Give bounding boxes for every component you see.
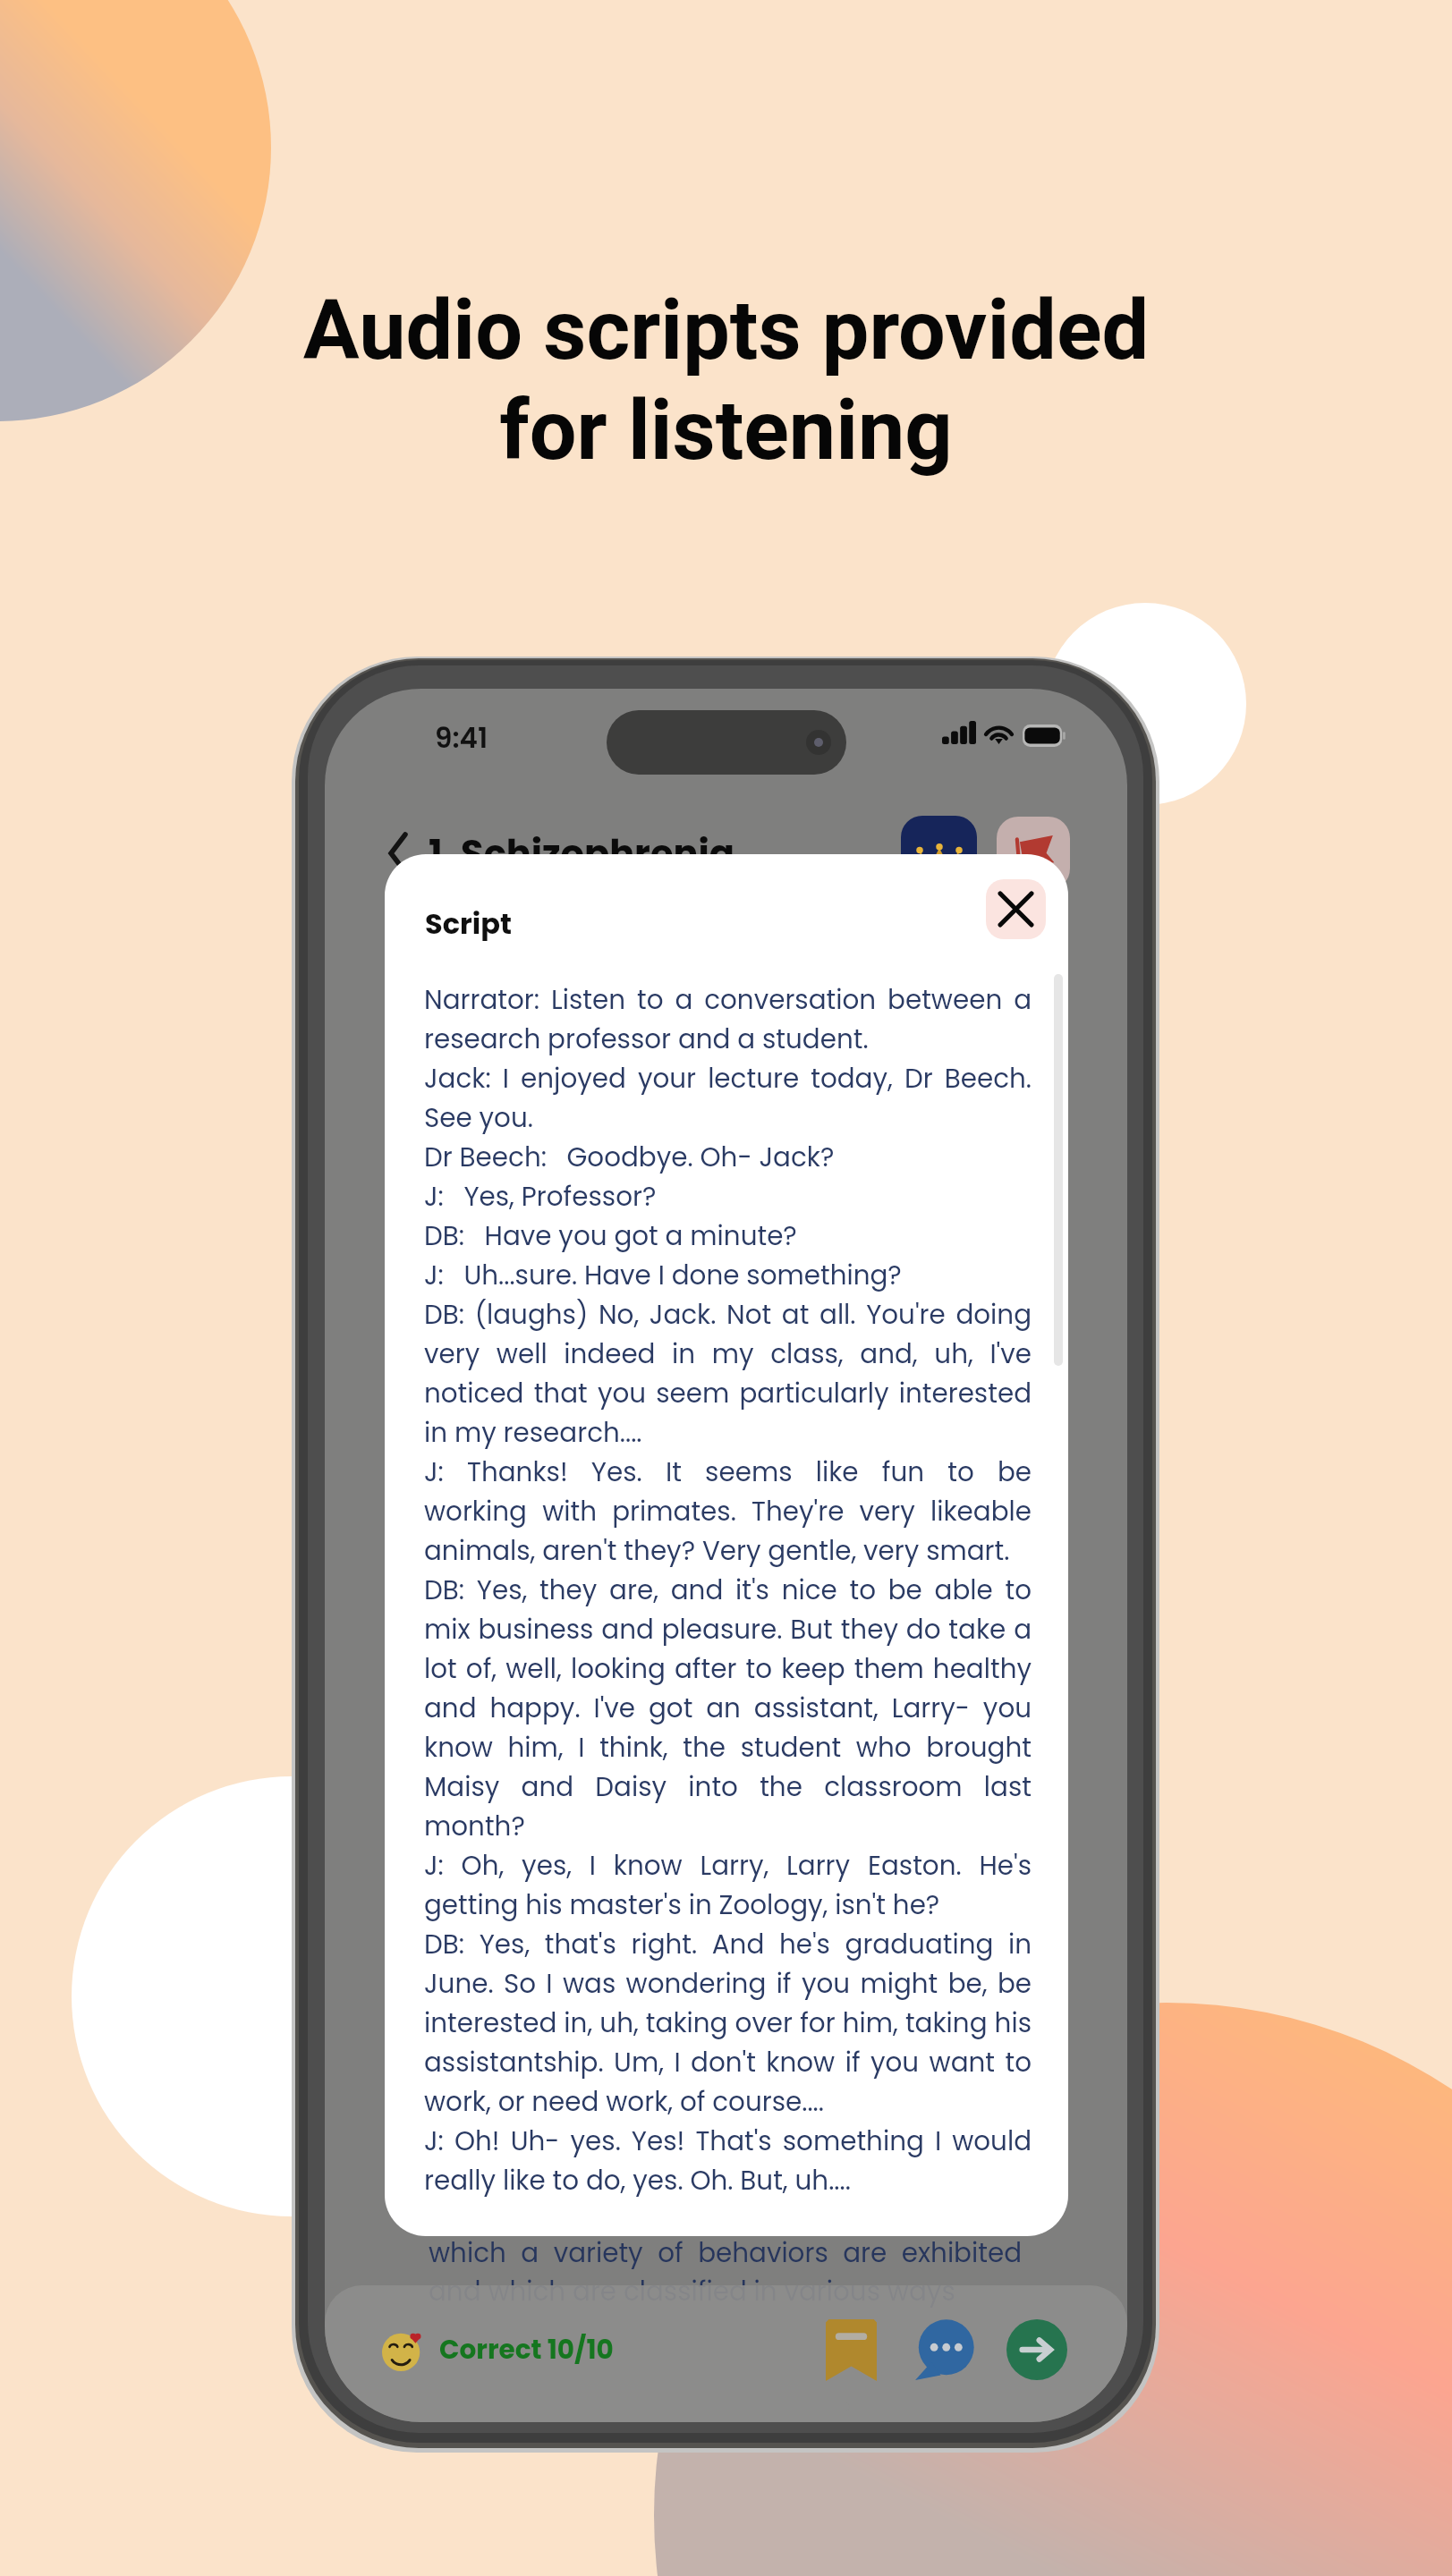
staticText: 1. Schizophrenia xyxy=(429,827,734,879)
staticText: 9:41 xyxy=(435,718,488,757)
button[interactable]: Bookmark xyxy=(814,2313,887,2386)
button[interactable]: Back xyxy=(380,821,416,885)
staticText: Narrator: Listen to a conversation betwe… xyxy=(424,981,1032,2199)
staticText: Audio scripts provided for listening xyxy=(0,281,1452,479)
staticText: which a variety of behaviors are exhibit… xyxy=(429,2234,1022,2309)
button[interactable]: Close xyxy=(986,879,1046,939)
button[interactable]: Comments xyxy=(907,2313,981,2386)
staticText: Script xyxy=(425,903,512,944)
button[interactable]: Report xyxy=(997,817,1070,890)
button[interactable]: Premium xyxy=(901,816,977,892)
button[interactable]: Next xyxy=(1000,2313,1074,2386)
staticText: Correct 10/10 xyxy=(439,2331,614,2368)
